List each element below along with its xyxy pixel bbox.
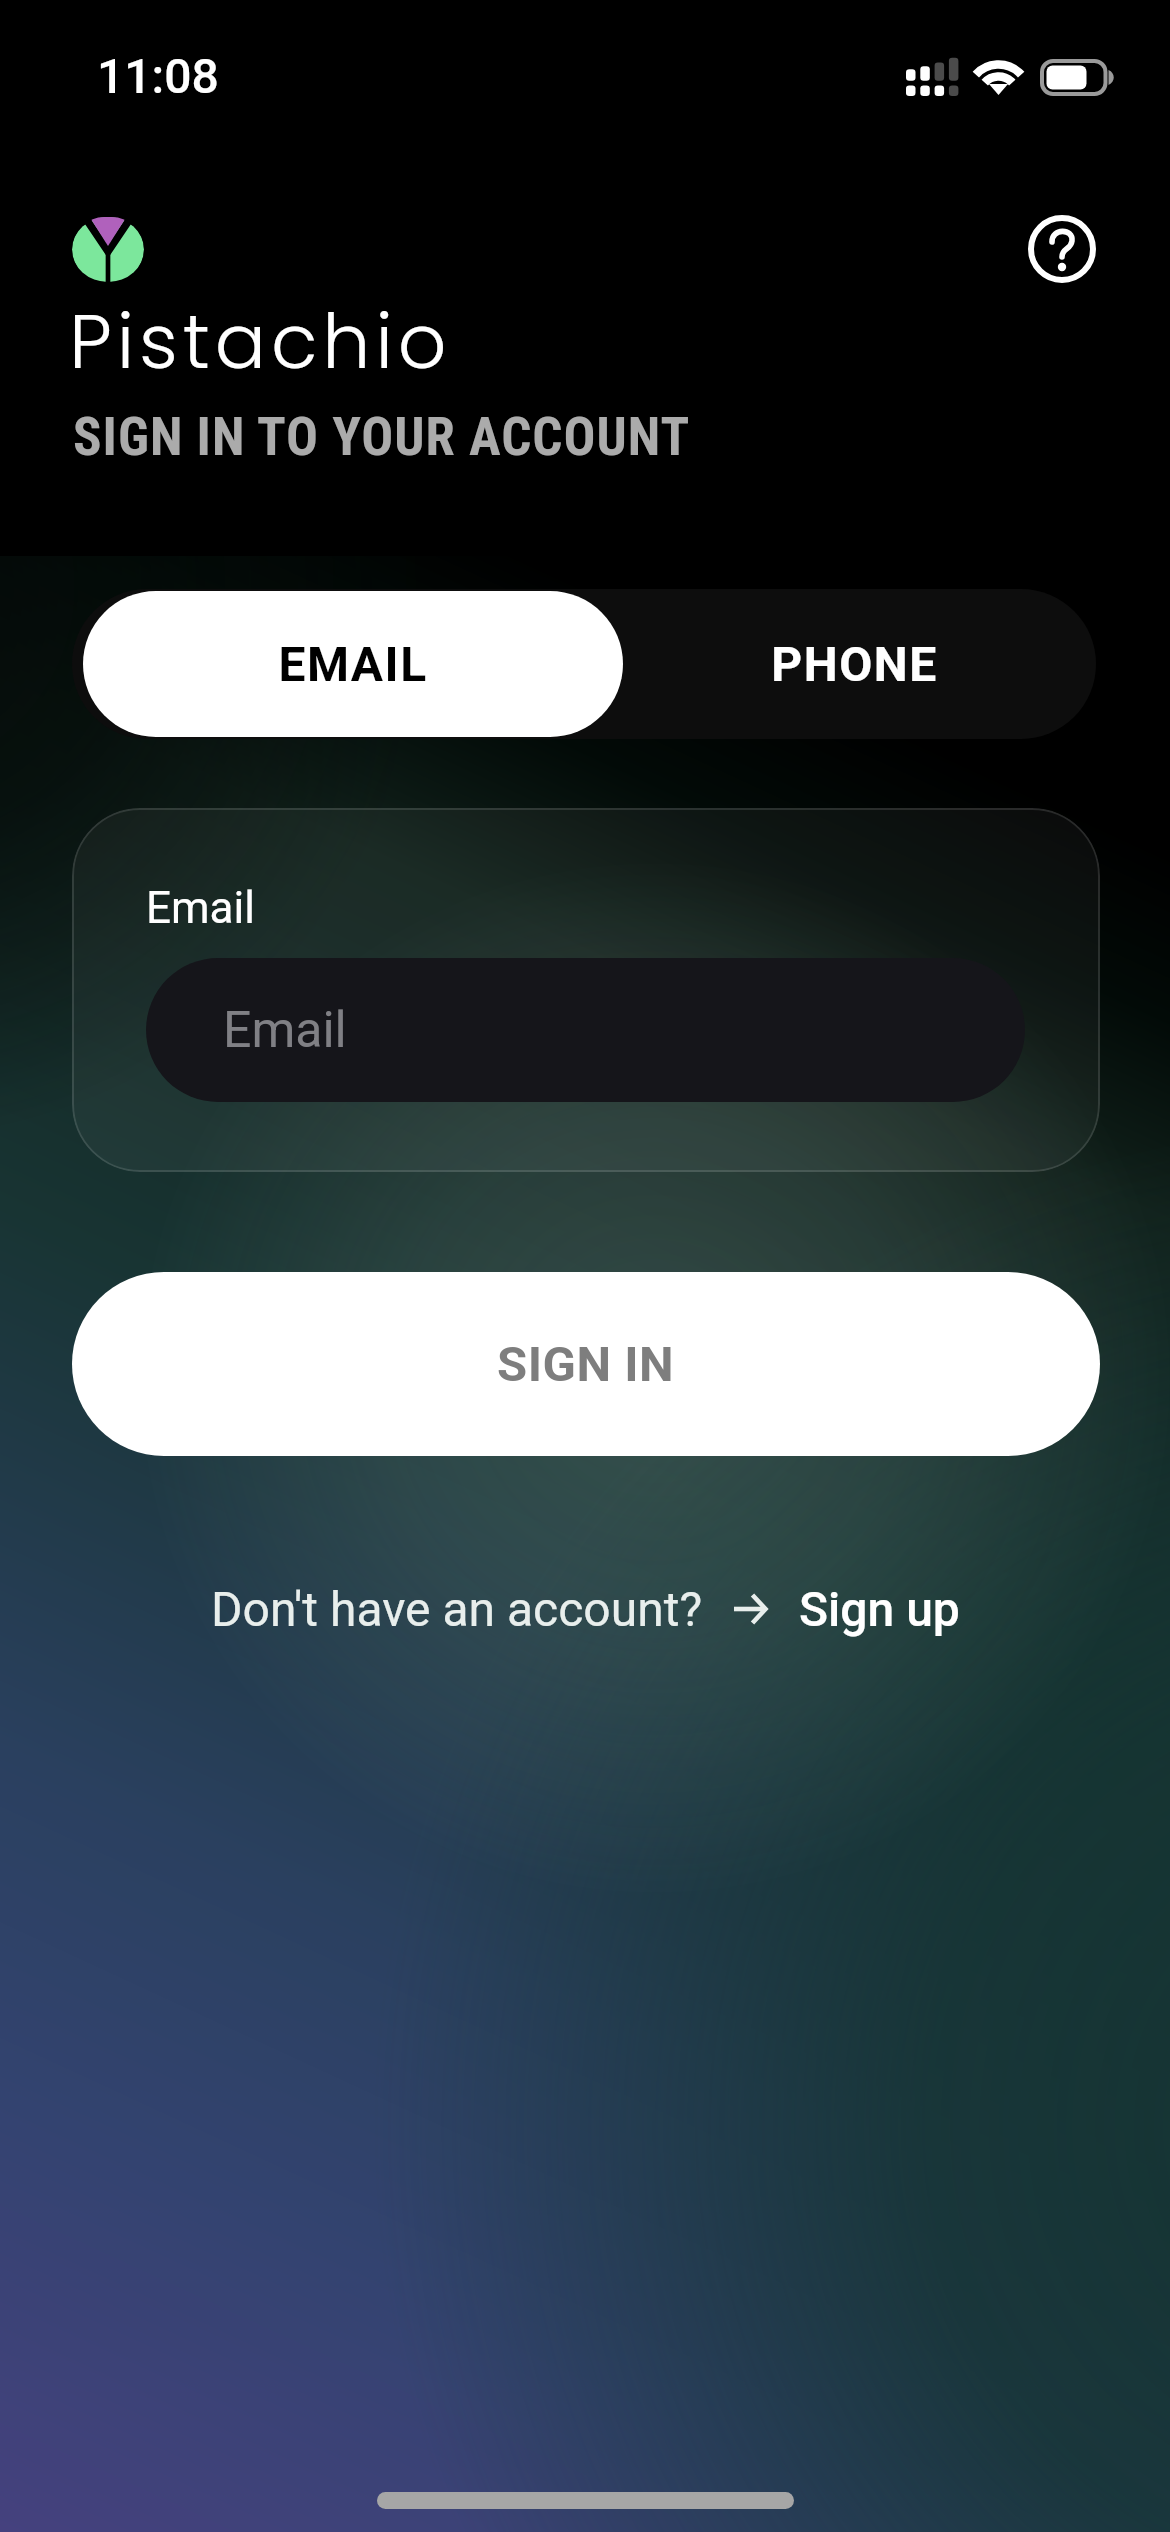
button[interactable]: Help — [1014, 201, 1110, 297]
staticText: Pistachio — [69, 288, 452, 394]
staticText: SIGN IN — [497, 1336, 675, 1393]
staticText: 11:08 — [97, 48, 219, 104]
staticText: Don't have an account? — [211, 1581, 703, 1637]
button[interactable]: Sign up — [799, 1581, 960, 1637]
staticText: PHONE — [771, 636, 938, 692]
button[interactable]: Email — [146, 958, 1025, 1102]
button[interactable]: SIGN IN — [72, 1272, 1100, 1456]
staticText: Email — [146, 882, 255, 934]
staticText: Email — [223, 1001, 347, 1060]
button[interactable]: PHONE — [623, 591, 1085, 737]
button[interactable]: EMAIL — [83, 591, 623, 737]
staticText: SIGN IN TO YOUR ACCOUNT — [73, 406, 691, 468]
staticText: EMAIL — [278, 636, 428, 692]
staticText: Sign up — [799, 1581, 960, 1637]
